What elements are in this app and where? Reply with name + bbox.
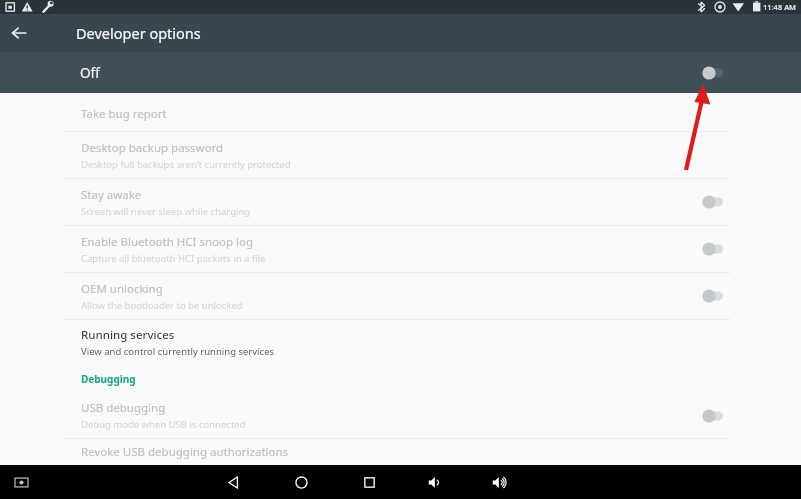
button[interactable]: Off: [0, 52, 801, 93]
staticText: Running services: [81, 327, 175, 343]
staticText: Stay awake: [81, 187, 142, 203]
staticText: Developer options: [76, 23, 201, 43]
button[interactable]: Enable Bluetooth HCI snoop log: [0, 226, 801, 272]
staticText: Enable Bluetooth HCI snoop log: [81, 234, 254, 250]
staticText: Desktop full backups aren't currently pr…: [81, 158, 291, 171]
staticText: Off: [80, 64, 100, 82]
button[interactable]: Volume down: [419, 466, 451, 498]
staticText: Allow the bootloader to be unlocked: [81, 299, 243, 312]
staticText: 11:48 AM: [763, 2, 796, 12]
staticText: Debug mode when USB is connected: [81, 418, 246, 431]
button[interactable]: OEM unlocking: [0, 273, 801, 319]
button[interactable]: Revoke USB debugging authorizations: [0, 439, 801, 465]
button[interactable]: Screenshot: [10, 471, 32, 493]
staticText: Capture all bluetooth HCI packets in a f…: [81, 252, 266, 265]
button[interactable]: Running services: [0, 320, 801, 365]
staticText: View and control currently running servi…: [81, 345, 275, 358]
button[interactable]: Desktop backup password: [0, 132, 801, 178]
staticText: Take bug report: [81, 106, 167, 122]
staticText: USB debugging: [81, 400, 166, 416]
staticText: Debugging: [81, 372, 136, 386]
button[interactable]: Stay awake: [0, 179, 801, 225]
button[interactable]: Home: [285, 466, 317, 498]
button[interactable]: Recents: [353, 466, 385, 498]
button[interactable]: USB debugging: [0, 393, 801, 438]
button[interactable]: Take bug report: [0, 96, 801, 131]
staticText: Desktop backup password: [81, 140, 224, 156]
staticText: Screen will never sleep while charging: [81, 205, 251, 218]
staticText: Revoke USB debugging authorizations: [81, 444, 289, 460]
button[interactable]: Back: [217, 466, 249, 498]
button[interactable]: Volume up: [483, 466, 515, 498]
button[interactable]: Back: [0, 14, 38, 52]
staticText: OEM unlocking: [81, 281, 163, 297]
